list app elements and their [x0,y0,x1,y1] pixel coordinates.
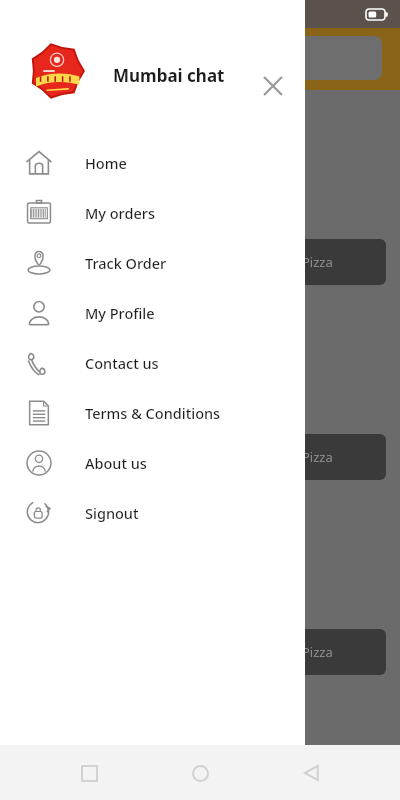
staticText: Mumbai chat [113,64,225,87]
staticText: My Profile [85,303,155,323]
staticText: Pizza [302,253,333,271]
button[interactable]: My Profile [0,288,305,338]
staticText: About us [85,453,147,473]
staticText: Pizza [302,448,333,466]
staticText: Contact us [85,353,159,373]
button[interactable]: Close menu [256,69,290,103]
button[interactable]: Signout [0,488,305,538]
staticText: Home [85,153,127,173]
button[interactable]: About us [0,438,305,488]
staticText: Signout [85,503,139,523]
button[interactable]: Contact us [0,338,305,388]
staticText: Pizza [302,643,333,661]
button[interactable]: My orders [0,188,305,238]
staticText: Terms & Conditions [85,403,221,423]
button[interactable]: Back [289,751,333,795]
button[interactable]: Terms & Conditions [0,388,305,438]
button[interactable]: Recent apps [67,751,111,795]
staticText: Track Order [85,253,167,273]
staticText: My orders [85,203,155,223]
button[interactable]: Home [0,138,305,188]
button[interactable]: Track Order [0,238,305,288]
button[interactable]: Home [178,751,222,795]
